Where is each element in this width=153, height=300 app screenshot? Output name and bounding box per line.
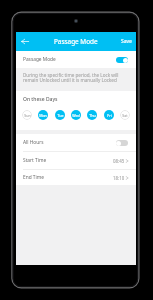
- button[interactable]: Fri: [104, 110, 114, 120]
- button[interactable]: Back: [16, 32, 33, 51]
- button[interactable]: Wed: [71, 110, 81, 120]
- staticText: End Time: [23, 174, 44, 181]
- button[interactable]: Mon: [38, 110, 48, 120]
- staticText: Passage Mode: [54, 37, 98, 46]
- staticText: Sat: [122, 113, 128, 118]
- staticText: Thu: [89, 113, 96, 118]
- staticText: Passage Mode: [23, 56, 56, 63]
- staticText: Tue: [57, 113, 64, 118]
- staticText: Sun: [24, 113, 31, 118]
- staticText: All Hours: [23, 139, 44, 146]
- staticText: Fri: [107, 113, 112, 118]
- button[interactable]: End Time: [16, 170, 136, 185]
- staticText: Start Time: [23, 157, 47, 164]
- staticText: Mon: [39, 113, 47, 118]
- button[interactable]: Thu: [87, 110, 97, 120]
- button[interactable]: Toggle: [116, 140, 128, 146]
- button[interactable]: Passage Mode: [16, 51, 136, 68]
- staticText: On these Days: [23, 96, 58, 103]
- staticText: Wed: [72, 113, 80, 118]
- button[interactable]: Sat: [120, 110, 130, 120]
- staticText: During the specific time period, the Loc…: [23, 72, 119, 83]
- button[interactable]: Tue: [55, 110, 65, 120]
- button[interactable]: Save: [117, 32, 136, 51]
- staticText: 08:45: [113, 158, 125, 164]
- button[interactable]: Toggle: [116, 57, 128, 63]
- staticText: 18:10: [113, 175, 125, 181]
- button[interactable]: All Hours: [16, 134, 136, 151]
- button[interactable]: Sun: [22, 110, 32, 120]
- button[interactable]: Start Time: [16, 152, 136, 169]
- staticText: Save: [121, 38, 132, 45]
